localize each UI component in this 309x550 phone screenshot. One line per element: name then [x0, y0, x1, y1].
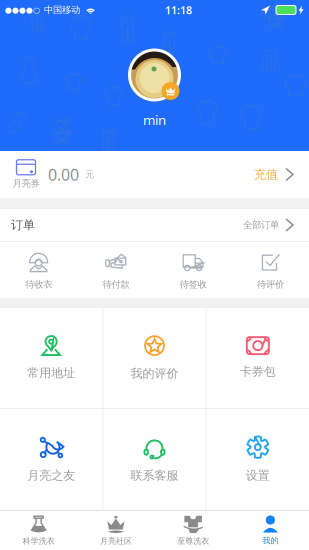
button[interactable]: 待评价: [232, 242, 309, 298]
button[interactable]: 订单: [0, 209, 309, 241]
button[interactable]: 联系客服: [103, 409, 206, 510]
staticText: 待付款: [102, 279, 129, 290]
button[interactable]: 待签收: [154, 242, 232, 298]
button[interactable]: 我的: [232, 511, 309, 550]
staticText: 中国移动: [44, 4, 80, 16]
button[interactable]: 待付款: [77, 242, 154, 298]
button[interactable]: 月亮之友: [0, 409, 102, 510]
button[interactable]: 科学洗衣: [0, 511, 77, 550]
staticText: 我的评价: [130, 366, 178, 381]
staticText: 月亮社区: [100, 536, 132, 546]
staticText: 待评价: [257, 279, 284, 290]
staticText: 待收衣: [25, 279, 52, 290]
staticText: 科学洗衣: [23, 536, 55, 546]
button[interactable]: 月亮券: [0, 151, 309, 198]
button[interactable]: 常用地址: [0, 308, 102, 408]
staticText: 常用地址: [27, 366, 75, 380]
staticText: 11:18: [165, 3, 192, 17]
staticText: ●●●●: [5, 5, 33, 15]
staticText: 月亮券: [12, 178, 39, 189]
staticText: 全部订单: [243, 219, 279, 231]
button[interactable]: 至尊洗衣: [154, 511, 232, 550]
staticText: 我的: [262, 536, 278, 545]
staticText: 订单: [11, 218, 35, 232]
staticText: min: [143, 111, 166, 129]
button[interactable]: 我的评价: [103, 308, 206, 408]
staticText: 月亮之友: [27, 468, 75, 483]
staticText: 设置: [246, 468, 270, 483]
button[interactable]: 月亮社区: [77, 511, 154, 550]
staticText: 至尊洗衣: [177, 536, 209, 546]
staticText: 待签收: [180, 279, 207, 290]
staticText: 卡券包: [240, 364, 276, 379]
staticText: 元: [85, 169, 94, 180]
button[interactable]: 卡券包: [207, 308, 309, 408]
staticText: 0.00: [48, 164, 79, 185]
button[interactable]: 待收衣: [0, 242, 77, 298]
staticText: ○: [33, 5, 40, 15]
button[interactable]: 设置: [207, 409, 309, 510]
staticText: 联系客服: [130, 468, 178, 483]
staticText: 充值: [254, 167, 278, 182]
